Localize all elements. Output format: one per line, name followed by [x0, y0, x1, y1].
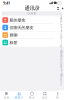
staticText: Z: [60, 82, 62, 86]
staticText: ☆: [60, 13, 62, 16]
staticText: 看点: [29, 96, 35, 99]
staticText: 动态: [42, 96, 48, 99]
staticText: C: [60, 22, 62, 25]
staticText: 我: [56, 96, 59, 99]
staticText: 群聊: [10, 33, 18, 37]
staticText: 通讯录: [24, 5, 39, 12]
button[interactable]: Add contact: [56, 6, 61, 10]
staticText: F: [61, 30, 62, 34]
staticText: P: [60, 59, 62, 63]
staticText: W: [60, 74, 62, 77]
staticText: Q: [60, 62, 62, 66]
staticText: 9:41: [3, 0, 10, 6]
staticText: 仅聊天的朋友: [10, 25, 34, 30]
staticText: 联系人: [15, 96, 24, 99]
staticText: 标签: [10, 40, 18, 45]
staticText: 新的朋友: [10, 18, 26, 22]
button[interactable]: 看点: [26, 90, 38, 100]
button[interactable]: 仅聊天的朋友: [0, 24, 64, 31]
staticText: I: [61, 39, 62, 43]
staticText: O: [60, 56, 62, 60]
staticText: R: [60, 65, 62, 69]
staticText: 搜索: [30, 12, 36, 15]
staticText: M: [60, 51, 62, 54]
staticText: Y: [60, 79, 62, 83]
staticText: S: [61, 68, 62, 71]
staticText: B: [60, 19, 62, 22]
staticText: T: [61, 71, 62, 74]
button[interactable]: 搜索: [2, 11, 62, 16]
button[interactable]: 我: [51, 90, 64, 100]
staticText: H: [60, 36, 62, 40]
button[interactable]: 联系人: [13, 90, 26, 100]
button[interactable]: 动态: [38, 90, 51, 100]
button[interactable]: 标签: [0, 39, 64, 46]
staticText: K: [60, 45, 62, 48]
staticText: J: [61, 42, 62, 46]
staticText: 消息: [3, 96, 9, 99]
button[interactable]: 新的朋友: [0, 16, 64, 24]
staticText: N: [60, 54, 62, 57]
staticText: L: [61, 48, 62, 51]
staticText: E: [61, 28, 62, 31]
staticText: X: [60, 77, 62, 80]
button[interactable]: 群聊: [0, 31, 64, 39]
staticText: A: [60, 16, 62, 20]
staticText: D: [60, 25, 62, 28]
button[interactable]: 消息: [0, 90, 13, 100]
staticText: G: [60, 33, 62, 37]
